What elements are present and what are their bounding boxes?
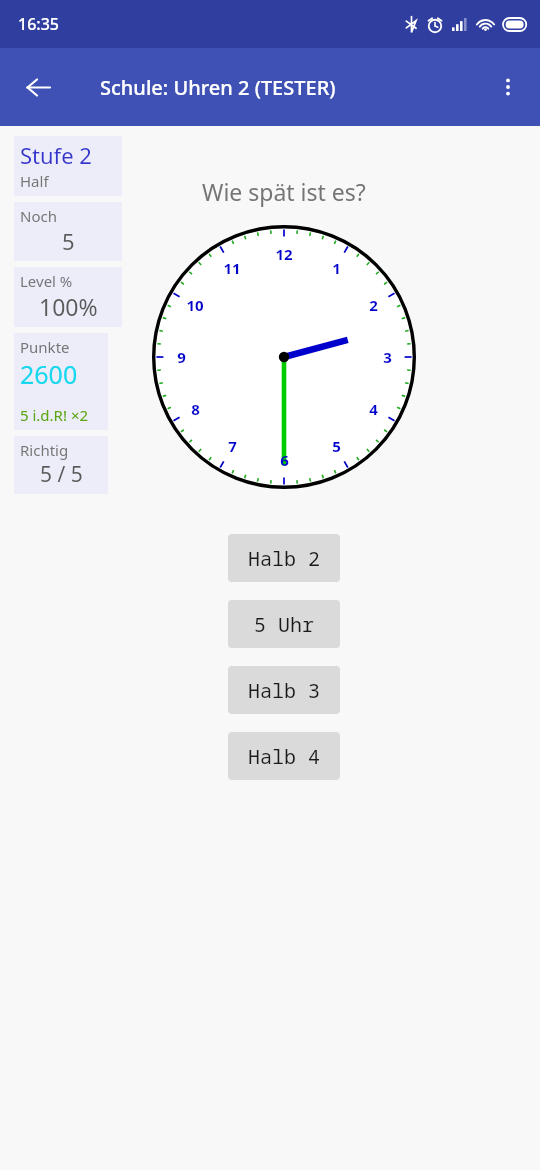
staticText: 1 <box>332 258 341 278</box>
button[interactable]: Punkte <box>14 333 108 430</box>
staticText: Richtig <box>20 440 69 460</box>
staticText: Halb 2 <box>248 545 320 572</box>
staticText: 7 <box>228 436 237 456</box>
staticText: Stufe 2 <box>20 140 92 170</box>
staticText: Halb 4 <box>248 743 320 770</box>
staticText: 16:35 <box>18 13 59 35</box>
staticText: 8 <box>191 399 200 419</box>
staticText: 11 <box>223 258 241 278</box>
button[interactable]: Halb 2 <box>228 534 340 582</box>
staticText: 100% <box>39 291 98 322</box>
staticText: 5 <box>62 226 75 256</box>
staticText: 3 <box>383 347 392 367</box>
button[interactable]: More options <box>484 63 532 111</box>
staticText: 10 <box>186 295 204 315</box>
staticText: Level % <box>20 271 73 291</box>
button[interactable]: Richtig <box>14 436 108 494</box>
staticText: 5 Uhr <box>254 611 314 638</box>
button[interactable]: Level % <box>14 267 122 327</box>
button[interactable]: 5 Uhr <box>228 600 340 648</box>
staticText: 5 / 5 <box>40 460 83 489</box>
staticText: 2600 <box>20 357 78 391</box>
button[interactable]: Halb 4 <box>228 732 340 780</box>
staticText: Punkte <box>20 337 70 357</box>
staticText: Wie spät ist es? <box>202 176 366 207</box>
staticText: 4 <box>369 399 378 419</box>
button[interactable]: Back <box>14 63 62 111</box>
staticText: 2 <box>369 295 378 315</box>
button[interactable]: Stufe 2 <box>14 136 122 196</box>
staticText: Schule: Uhren 2 (TESTER) <box>100 74 336 101</box>
staticText: Half <box>20 171 49 191</box>
staticText: 12 <box>275 244 293 264</box>
staticText: Noch <box>20 206 57 226</box>
button[interactable]: Noch <box>14 202 122 261</box>
staticText: Halb 3 <box>248 677 320 704</box>
staticText: 9 <box>177 347 186 367</box>
staticText: 5 i.d.R! ×2 <box>20 405 89 425</box>
button[interactable]: Halb 3 <box>228 666 340 714</box>
staticText: 6 <box>280 450 289 470</box>
staticText: 5 <box>332 436 341 456</box>
